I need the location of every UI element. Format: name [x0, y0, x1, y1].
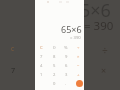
button[interactable]: 6: [60, 61, 72, 70]
staticText: 0: [53, 81, 56, 87]
button[interactable]: 1: [35, 70, 48, 79]
staticText: 9: [65, 54, 68, 60]
staticText: C: [11, 46, 15, 53]
button[interactable]: (): [48, 43, 60, 52]
staticText: 2: [53, 72, 56, 78]
button[interactable]: −: [72, 61, 84, 70]
button[interactable]: Equals: [76, 80, 83, 87]
button[interactable]: ×: [72, 52, 84, 61]
staticText: ×: [77, 54, 80, 60]
staticText: 7: [11, 65, 16, 75]
button[interactable]: ÷: [72, 43, 84, 52]
staticText: 1: [40, 72, 43, 78]
staticText: +: [77, 72, 80, 78]
button[interactable]: %: [60, 43, 72, 52]
staticText: 7: [40, 54, 43, 60]
staticText: −: [77, 63, 80, 69]
button[interactable]: 0: [48, 79, 60, 88]
button[interactable]: 5: [48, 61, 60, 70]
staticText: 5: [53, 63, 56, 69]
button[interactable]: 4: [35, 61, 48, 70]
staticText: .: [65, 81, 67, 87]
button[interactable]: 3: [60, 70, 72, 79]
staticText: ×: [101, 64, 107, 76]
button[interactable]: 8: [48, 52, 60, 61]
button[interactable]: 2: [48, 70, 60, 79]
staticText: 5×6: [80, 0, 111, 23]
button[interactable]: C: [35, 43, 48, 52]
staticText: (): [53, 45, 56, 51]
staticText: ÷: [102, 44, 108, 56]
staticText: 3: [65, 72, 68, 78]
staticText: = 390: [84, 18, 114, 34]
staticText: 8: [53, 54, 56, 60]
staticText: 6: [65, 63, 68, 69]
staticText: C: [40, 45, 43, 51]
button[interactable]: 9: [60, 52, 72, 61]
staticText: %: [64, 45, 68, 51]
staticText: 4: [40, 63, 43, 69]
button[interactable]: 7: [35, 52, 48, 61]
staticText: ÷: [77, 45, 80, 51]
staticText: = 390: [70, 35, 81, 40]
staticText: 65×6: [61, 23, 82, 35]
button[interactable]: +: [72, 70, 84, 79]
